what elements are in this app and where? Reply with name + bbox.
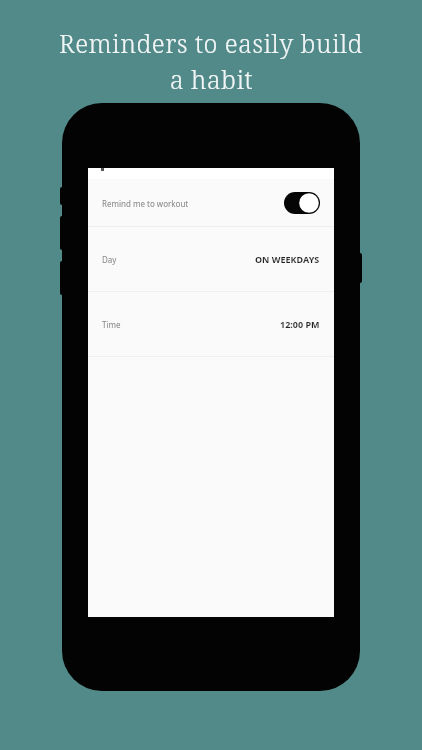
staticText: 12:00 PM — [280, 318, 320, 330]
staticText: Time — [102, 319, 121, 330]
button[interactable]: Day — [88, 227, 334, 291]
button[interactable]: Toggle reminder — [284, 192, 320, 214]
staticText: a habit — [170, 62, 253, 96]
staticText: Day — [102, 254, 117, 265]
staticText: Reminders to easily build — [59, 26, 363, 60]
button[interactable]: Time — [88, 292, 334, 356]
staticText: ON WEEKDAYS — [255, 253, 320, 265]
button[interactable]: Remind me to workout — [88, 180, 334, 226]
staticText: Remind me to workout — [102, 198, 189, 209]
